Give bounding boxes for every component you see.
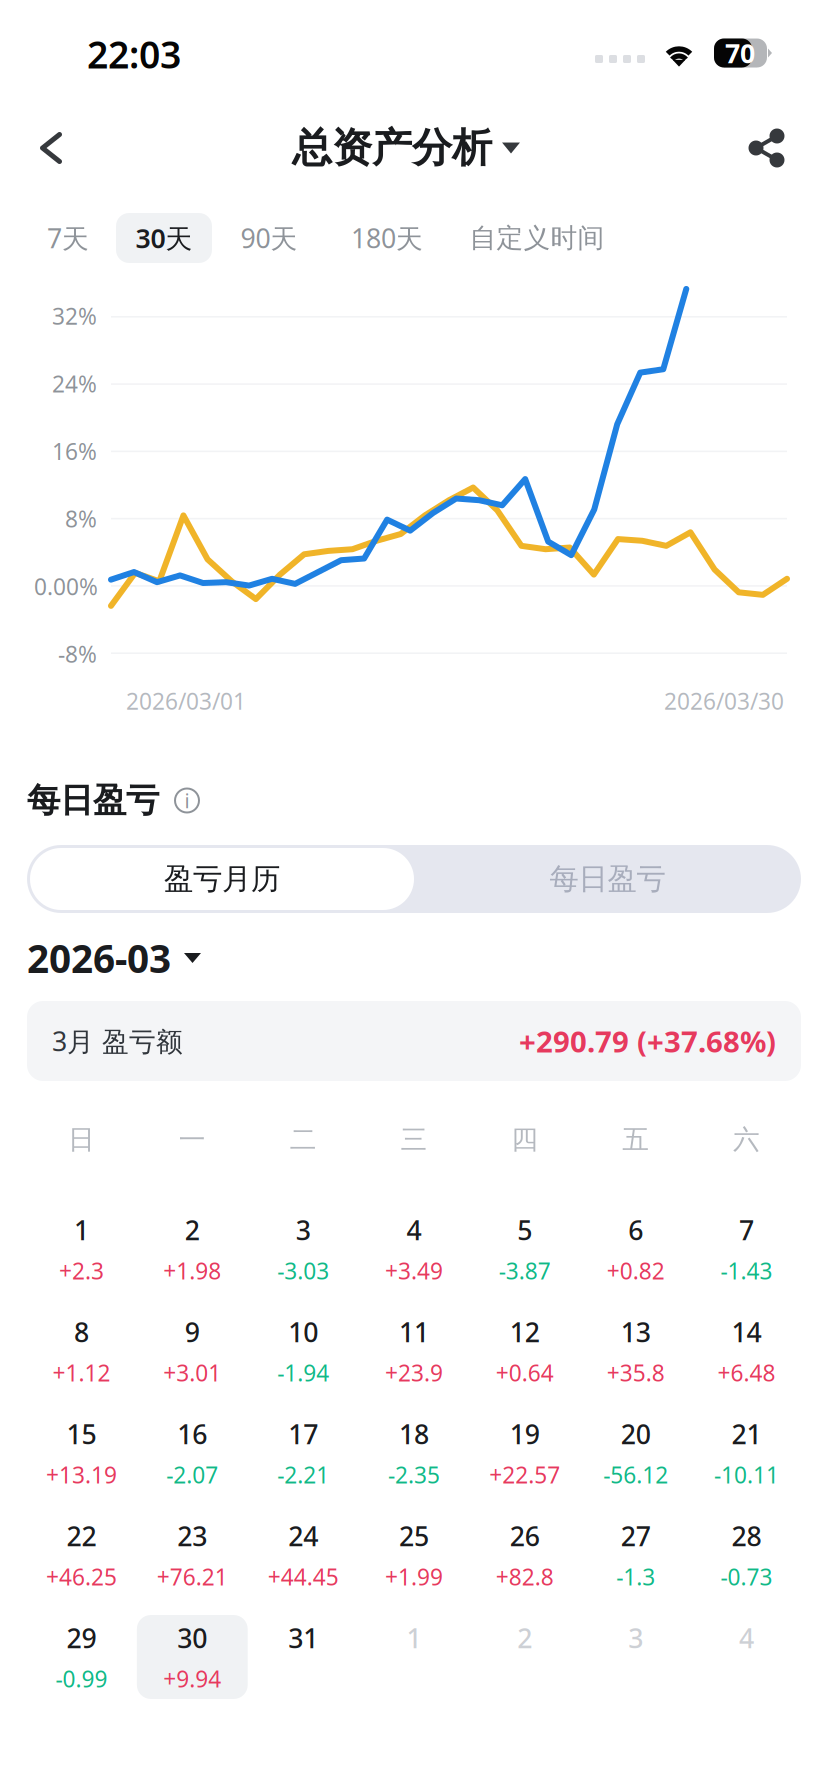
staticText: -2.35	[388, 1460, 440, 1490]
staticText: +3.49	[385, 1256, 443, 1286]
button[interactable]: 15	[26, 1411, 137, 1495]
button[interactable]: 每日盈亏	[414, 861, 801, 897]
staticText: -0.99	[55, 1664, 107, 1694]
staticText: 22	[66, 1518, 96, 1554]
button[interactable]: 26	[469, 1513, 580, 1597]
staticText: +1.12	[52, 1358, 110, 1388]
button[interactable]: 28	[691, 1513, 802, 1597]
button[interactable]: 6	[580, 1207, 691, 1291]
button[interactable]: 180天	[352, 213, 422, 263]
button[interactable]: 8	[26, 1309, 137, 1393]
button[interactable]: 9	[137, 1309, 248, 1393]
button[interactable]: 31	[248, 1615, 359, 1699]
staticText: -8%	[58, 639, 97, 669]
button[interactable]: 3	[580, 1615, 691, 1699]
staticText: 90天	[240, 220, 297, 256]
button[interactable]: 30	[137, 1615, 248, 1699]
button[interactable]: 21	[691, 1411, 802, 1495]
button[interactable]: 11	[359, 1309, 469, 1393]
staticText: 1	[74, 1212, 89, 1248]
staticText: 1	[406, 1620, 421, 1656]
staticText: 6	[628, 1212, 643, 1248]
staticText: -56.12	[603, 1460, 668, 1490]
staticText: 24%	[52, 368, 97, 399]
button[interactable]: 总资产分析	[292, 123, 536, 172]
staticText: 25	[399, 1518, 429, 1554]
button[interactable]: 2	[469, 1615, 580, 1699]
staticText: 70	[725, 35, 755, 71]
staticText: 四	[511, 1123, 538, 1156]
button[interactable]: 4	[359, 1207, 469, 1291]
staticText: 16%	[52, 436, 97, 466]
button[interactable]: 22	[26, 1513, 137, 1597]
staticText: 五	[622, 1123, 649, 1156]
button[interactable]: 18	[359, 1411, 469, 1495]
button[interactable]: 24	[248, 1513, 359, 1597]
button[interactable]: 23	[137, 1513, 248, 1597]
staticText: 8%	[65, 504, 97, 534]
staticText: +44.45	[268, 1562, 339, 1592]
staticText: 12	[510, 1314, 540, 1350]
staticText: -1.3	[616, 1562, 655, 1592]
button[interactable]: 16	[137, 1411, 248, 1495]
button[interactable]: 盈亏月历	[27, 848, 414, 910]
staticText: +35.8	[607, 1358, 665, 1388]
staticText: 二	[290, 1123, 317, 1156]
button[interactable]: 7	[691, 1207, 802, 1291]
staticText: +22.57	[489, 1460, 560, 1490]
button[interactable]: 20	[580, 1411, 691, 1495]
staticText: 20	[621, 1416, 651, 1452]
staticText: 2026-03	[27, 932, 171, 984]
button[interactable]: 17	[248, 1411, 359, 1495]
button[interactable]: 4	[691, 1615, 802, 1699]
staticText: +46.25	[46, 1562, 117, 1592]
staticText: 自定义时间	[469, 222, 604, 254]
button[interactable]: 2	[137, 1207, 248, 1291]
staticText: 16	[177, 1416, 207, 1452]
button[interactable]: 2026-03	[27, 932, 201, 984]
staticText: 总资产分析	[292, 123, 492, 172]
button[interactable]: 7天	[46, 213, 90, 263]
staticText: 3月 盈亏额	[52, 1023, 183, 1059]
button[interactable]: 10	[248, 1309, 359, 1393]
staticText: 3	[628, 1620, 643, 1656]
button[interactable]: 30天	[116, 213, 212, 263]
staticText: 一	[179, 1123, 206, 1156]
staticText: 32%	[52, 301, 97, 331]
button[interactable]: 5	[469, 1207, 580, 1291]
staticText: +0.64	[496, 1358, 554, 1388]
staticText: +3.01	[163, 1358, 221, 1388]
staticText: 17	[288, 1416, 318, 1452]
button[interactable]: Info	[173, 786, 201, 814]
staticText: 11	[399, 1314, 429, 1350]
button[interactable]: 90天	[240, 213, 298, 263]
button[interactable]: 自定义时间	[474, 213, 600, 263]
staticText: 18	[399, 1416, 429, 1452]
staticText: 31	[288, 1620, 318, 1656]
button[interactable]: 12	[469, 1309, 580, 1393]
button[interactable]: 29	[26, 1615, 137, 1699]
button[interactable]: Back	[8, 105, 94, 191]
staticText: 7	[739, 1212, 754, 1248]
button[interactable]: Share	[724, 105, 810, 191]
staticText: 14	[732, 1314, 762, 1350]
button[interactable]: 25	[359, 1513, 469, 1597]
button[interactable]: 3	[248, 1207, 359, 1291]
button[interactable]: 13	[580, 1309, 691, 1393]
button[interactable]: 1	[26, 1207, 137, 1291]
staticText: 24	[288, 1518, 318, 1554]
button[interactable]: 27	[580, 1513, 691, 1597]
staticText: 29	[66, 1620, 96, 1656]
button[interactable]: 1	[359, 1615, 469, 1699]
staticText: -2.21	[277, 1460, 329, 1490]
staticText: 9	[185, 1314, 200, 1350]
button[interactable]: 19	[469, 1411, 580, 1495]
staticText: +82.8	[496, 1562, 554, 1592]
staticText: 30天	[135, 220, 192, 256]
button[interactable]: 14	[691, 1309, 802, 1393]
staticText: 10	[288, 1314, 318, 1350]
staticText: 每日盈亏	[27, 780, 159, 821]
staticText: 0.00%	[34, 571, 98, 601]
